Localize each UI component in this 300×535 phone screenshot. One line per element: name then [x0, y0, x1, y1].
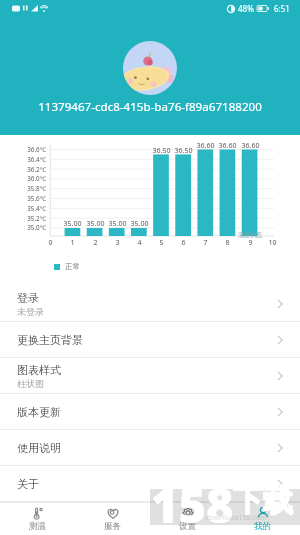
staticText: 版本更新 [17, 405, 61, 419]
staticText: 3 [115, 238, 120, 248]
staticText: 36.60 [218, 140, 237, 150]
staticText: 下载 [233, 482, 293, 520]
staticText: 柱状图 [17, 378, 44, 389]
staticText: 8 [225, 238, 230, 248]
button[interactable]: 使用说明 [0, 430, 300, 466]
staticText: 36.50 [174, 145, 193, 155]
staticText: 36.0℃ [27, 174, 46, 183]
staticText: 测温 [29, 521, 46, 532]
staticText: 6 [181, 238, 186, 248]
staticText: 更换主页背景 [17, 333, 83, 347]
staticText: 35.00 [130, 218, 149, 228]
staticText: 36.6℃ [27, 145, 46, 154]
staticText: 36.2℃ [27, 165, 46, 174]
staticText: 登录 [17, 291, 39, 305]
staticText: 35.00 [63, 218, 82, 228]
staticText: 关于 [17, 477, 39, 491]
staticText: 未登录 [17, 306, 44, 317]
staticText: 35.0℃ [27, 223, 46, 232]
button[interactable]: 我的 [225, 503, 300, 535]
button[interactable]: 登录 [0, 286, 300, 322]
staticText: 4 [137, 238, 142, 248]
staticText: 36.60 [196, 140, 215, 150]
staticText: 1 [70, 238, 75, 248]
button[interactable]: 图表样式 [0, 358, 300, 394]
staticText: 11379467-cdc8-415b-ba76-f89a67188200 [38, 99, 262, 115]
staticText: 7 [203, 238, 208, 248]
staticText: 35.2℃ [27, 214, 46, 223]
staticText: 服务 [104, 521, 121, 532]
staticText: 35.4℃ [27, 204, 46, 213]
staticText: 36.60 [241, 140, 260, 150]
staticText: 设置 [179, 521, 196, 532]
staticText: 我的 [254, 521, 271, 532]
staticText: 158 [151, 473, 234, 535]
button[interactable]: 更换主页背景 [0, 322, 300, 358]
staticText: 10 [268, 238, 277, 248]
staticText: 2 [93, 238, 98, 248]
button[interactable]: 服务 [75, 503, 150, 535]
staticText: 35.00 [108, 218, 127, 228]
staticText: 36.4℃ [27, 155, 46, 164]
staticText: download158.com [206, 513, 267, 523]
staticText: 图表样式 [17, 363, 61, 377]
button[interactable]: Profile avatar [123, 41, 177, 95]
staticText: 5 [159, 238, 164, 248]
staticText: 正常 [65, 262, 80, 271]
button[interactable]: 设置 [150, 503, 225, 535]
staticText: 48% [238, 3, 254, 14]
staticText: 温度状态 [238, 231, 262, 239]
staticText: 35.6℃ [27, 194, 46, 203]
button[interactable]: 关于 [0, 466, 300, 502]
staticText: 使用说明 [17, 441, 61, 455]
staticText: 6:51 [274, 3, 290, 14]
staticText: 35.00 [86, 218, 105, 228]
button[interactable]: 测温 [0, 503, 75, 535]
staticText: 35.8℃ [27, 184, 46, 193]
staticText: 36.50 [152, 145, 171, 155]
staticText: 0 [48, 238, 53, 248]
button[interactable]: 版本更新 [0, 394, 300, 430]
staticText: 9 [248, 238, 253, 248]
